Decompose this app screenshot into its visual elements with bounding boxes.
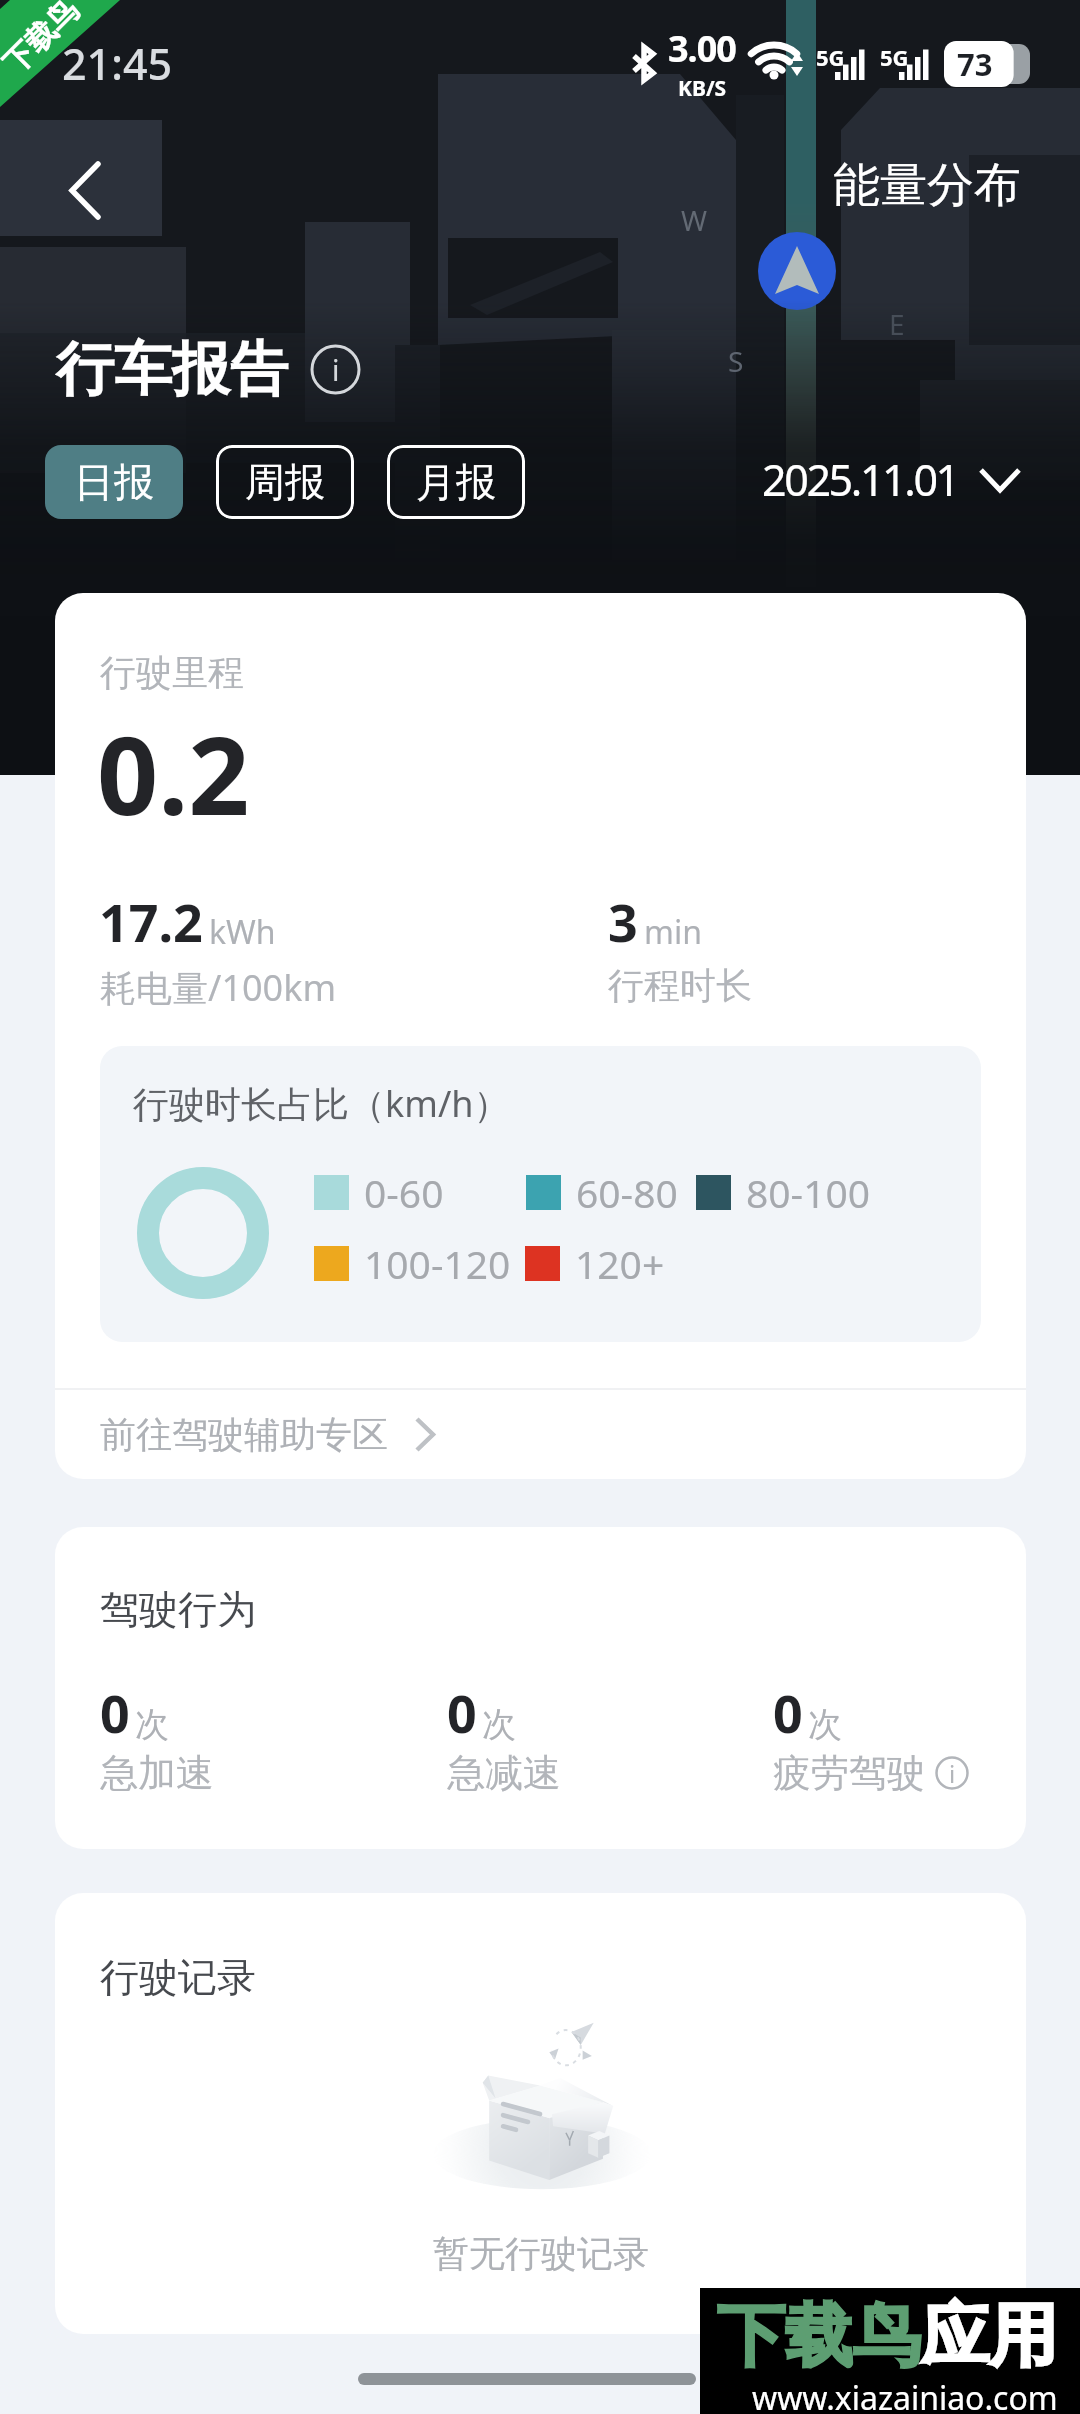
staticText: 0-60 <box>364 1166 444 1219</box>
staticText: 17.2 <box>99 886 203 957</box>
staticText: www.xiazainiao.com <box>752 2376 1058 2414</box>
staticText: 次 <box>482 1703 516 1746</box>
staticText: 月报 <box>416 457 496 507</box>
staticText: i <box>949 1757 956 1790</box>
staticText: 急加速 <box>100 1749 214 1797</box>
staticText: W <box>681 201 708 239</box>
staticText: S <box>728 342 744 380</box>
button[interactable]: Info <box>310 344 361 395</box>
staticText: 次 <box>135 1703 169 1746</box>
button[interactable]: 2025.11.01 <box>762 450 1022 509</box>
staticText: 行程时长 <box>608 963 752 1008</box>
staticText: min <box>644 910 702 954</box>
staticText: 3 <box>608 886 638 957</box>
button[interactable]: 前往驾驶辅助专区 <box>55 1390 1026 1479</box>
button[interactable]: 月报 <box>387 445 525 519</box>
staticText: 暂无行驶记录 <box>433 2231 649 2276</box>
staticText: 60-80 <box>576 1166 678 1219</box>
staticText: 0.2 <box>97 701 250 847</box>
staticText: 下载鸟 <box>0 0 86 82</box>
button[interactable]: Back <box>30 135 140 245</box>
staticText: 能量分布 <box>833 156 1021 215</box>
button[interactable]: 周报 <box>216 445 354 519</box>
staticText: 0 <box>447 1677 477 1748</box>
staticText: E <box>889 305 905 343</box>
staticText: kWh <box>209 910 276 954</box>
staticText: 下载鸟 <box>717 2294 921 2380</box>
staticText: 0 <box>100 1677 130 1748</box>
button[interactable]: 能量分布 <box>818 146 1036 224</box>
staticText: 应用 <box>921 2294 1057 2380</box>
staticText: 2025.11.01 <box>762 450 958 509</box>
staticText: 次 <box>808 1703 842 1746</box>
staticText: 行驶记录 <box>100 1953 256 2002</box>
staticText: 耗电量/100km <box>100 963 337 1012</box>
staticText: 5G <box>880 42 909 72</box>
staticText: 21:45 <box>62 34 173 93</box>
staticText: 5G <box>816 42 845 72</box>
button[interactable]: 日报 <box>45 445 183 519</box>
staticText: 周报 <box>245 457 325 507</box>
staticText: KB/S <box>678 74 727 103</box>
staticText: 0 <box>773 1677 803 1748</box>
staticText: 80-100 <box>746 1166 871 1219</box>
staticText: 驾驶行为 <box>100 1585 256 1634</box>
staticText: 日报 <box>74 457 154 507</box>
staticText: 100-120 <box>364 1237 511 1290</box>
staticText: 前往驾驶辅助专区 <box>100 1412 388 1457</box>
staticText: i <box>332 350 340 389</box>
staticText: 行驶里程 <box>100 650 244 695</box>
staticText: 行车报告 <box>56 333 288 406</box>
staticText: 行驶时长占比（km/h） <box>133 1079 510 1128</box>
staticText: 73 <box>957 43 993 85</box>
staticText: 急减速 <box>447 1749 561 1797</box>
staticText: 120+ <box>575 1237 665 1290</box>
staticText: 3.00 <box>668 24 736 73</box>
staticText: 疲劳驾驶 <box>773 1749 925 1797</box>
button[interactable]: About fatigue driving <box>935 1756 969 1790</box>
